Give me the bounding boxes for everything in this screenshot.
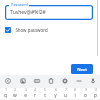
staticText: p [94, 92, 97, 99]
staticText: 4 [34, 88, 36, 92]
staticText: y [54, 92, 57, 99]
button[interactable]: Password [5, 5, 93, 20]
staticText: 8 [74, 88, 76, 92]
staticText: 5 [44, 88, 46, 92]
button[interactable]: More [72, 75, 86, 87]
staticText: r [34, 92, 36, 99]
staticText: o [84, 92, 87, 99]
button[interactable]: 1 [0, 88, 10, 99]
staticText: t [44, 92, 46, 99]
staticText: q [4, 92, 7, 99]
button[interactable]: 4 [30, 88, 40, 99]
staticText: 6 [55, 88, 57, 92]
staticText: Next [77, 66, 87, 72]
staticText: 0 [95, 88, 97, 92]
staticText: u [64, 92, 67, 99]
button[interactable]: 2 [10, 88, 20, 99]
button[interactable]: Show password [5, 25, 48, 34]
staticText: w [13, 92, 17, 99]
staticText: 3 [25, 88, 27, 92]
staticText: i [74, 92, 76, 99]
button[interactable]: Clipboard [44, 75, 58, 87]
button[interactable]: 5 [40, 88, 50, 99]
staticText: 7 [65, 88, 67, 92]
button[interactable]: Previous [0, 75, 15, 87]
staticText: Tushev@#%!2# [10, 9, 46, 16]
button[interactable]: 0 [90, 88, 100, 99]
staticText: Password [11, 2, 28, 7]
button[interactable]: Stickers [15, 75, 30, 87]
button[interactable]: 8 [70, 88, 80, 99]
button[interactable]: Next [71, 64, 93, 74]
button[interactable]: 9 [80, 88, 90, 99]
staticText: 9 [85, 88, 87, 92]
button[interactable]: 3 [20, 88, 30, 99]
button[interactable]: Settings [58, 75, 72, 87]
button[interactable]: GIF [30, 75, 44, 87]
staticText: 1 [5, 88, 7, 92]
button[interactable]: Voice input [86, 75, 100, 87]
staticText: 2 [14, 88, 16, 92]
staticText: Show password [15, 27, 48, 33]
button[interactable]: 7 [60, 88, 70, 99]
button[interactable]: 6 [50, 88, 60, 99]
staticText: e [24, 92, 27, 99]
